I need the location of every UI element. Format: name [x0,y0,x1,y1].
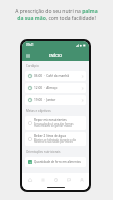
button[interactable]: Progresso [50,174,61,185]
staticText: A musculação é uma das formas mais efica… [34,122,74,128]
staticText: 06:00 · Café da manhã [34,74,69,78]
button[interactable]: 06:00 · Café da manhã [25,71,86,81]
button[interactable]: Beber 2 litros de água [25,132,86,146]
button[interactable]: Menu [23,51,32,60]
button[interactable]: Mensagens [63,174,74,185]
button[interactable]: Repor micronutrientes [25,116,86,130]
staticText: Manter-se hidratado durante o dia favore… [34,138,76,144]
staticText: Orientações nutricionais [26,150,61,154]
staticText: 12:00 · Almoço [34,86,58,90]
staticText: 09:41 [26,43,34,47]
staticText: 19:00 · Jantar [34,98,56,102]
button[interactable]: Quantidade de ferro em alimentos [25,157,86,167]
staticText: Beber 2 litros de água [34,134,66,138]
staticText: Cardápio [26,64,39,68]
button[interactable]: Perfil [76,174,87,185]
staticText: INÍCIO [49,53,63,58]
staticText: A prescrição do seu nutri na palma da su… [15,8,98,22]
button[interactable]: Cardápio [37,174,48,185]
button[interactable]: Início [24,174,35,185]
button[interactable]: 19:00 · Jantar [25,95,86,105]
staticText: Quantidade de ferro em alimentos [34,160,81,164]
staticText: Repor micronutrientes [34,118,67,122]
staticText: Metas e objetivos [26,109,51,113]
button[interactable]: 12:00 · Almoço [25,83,86,93]
